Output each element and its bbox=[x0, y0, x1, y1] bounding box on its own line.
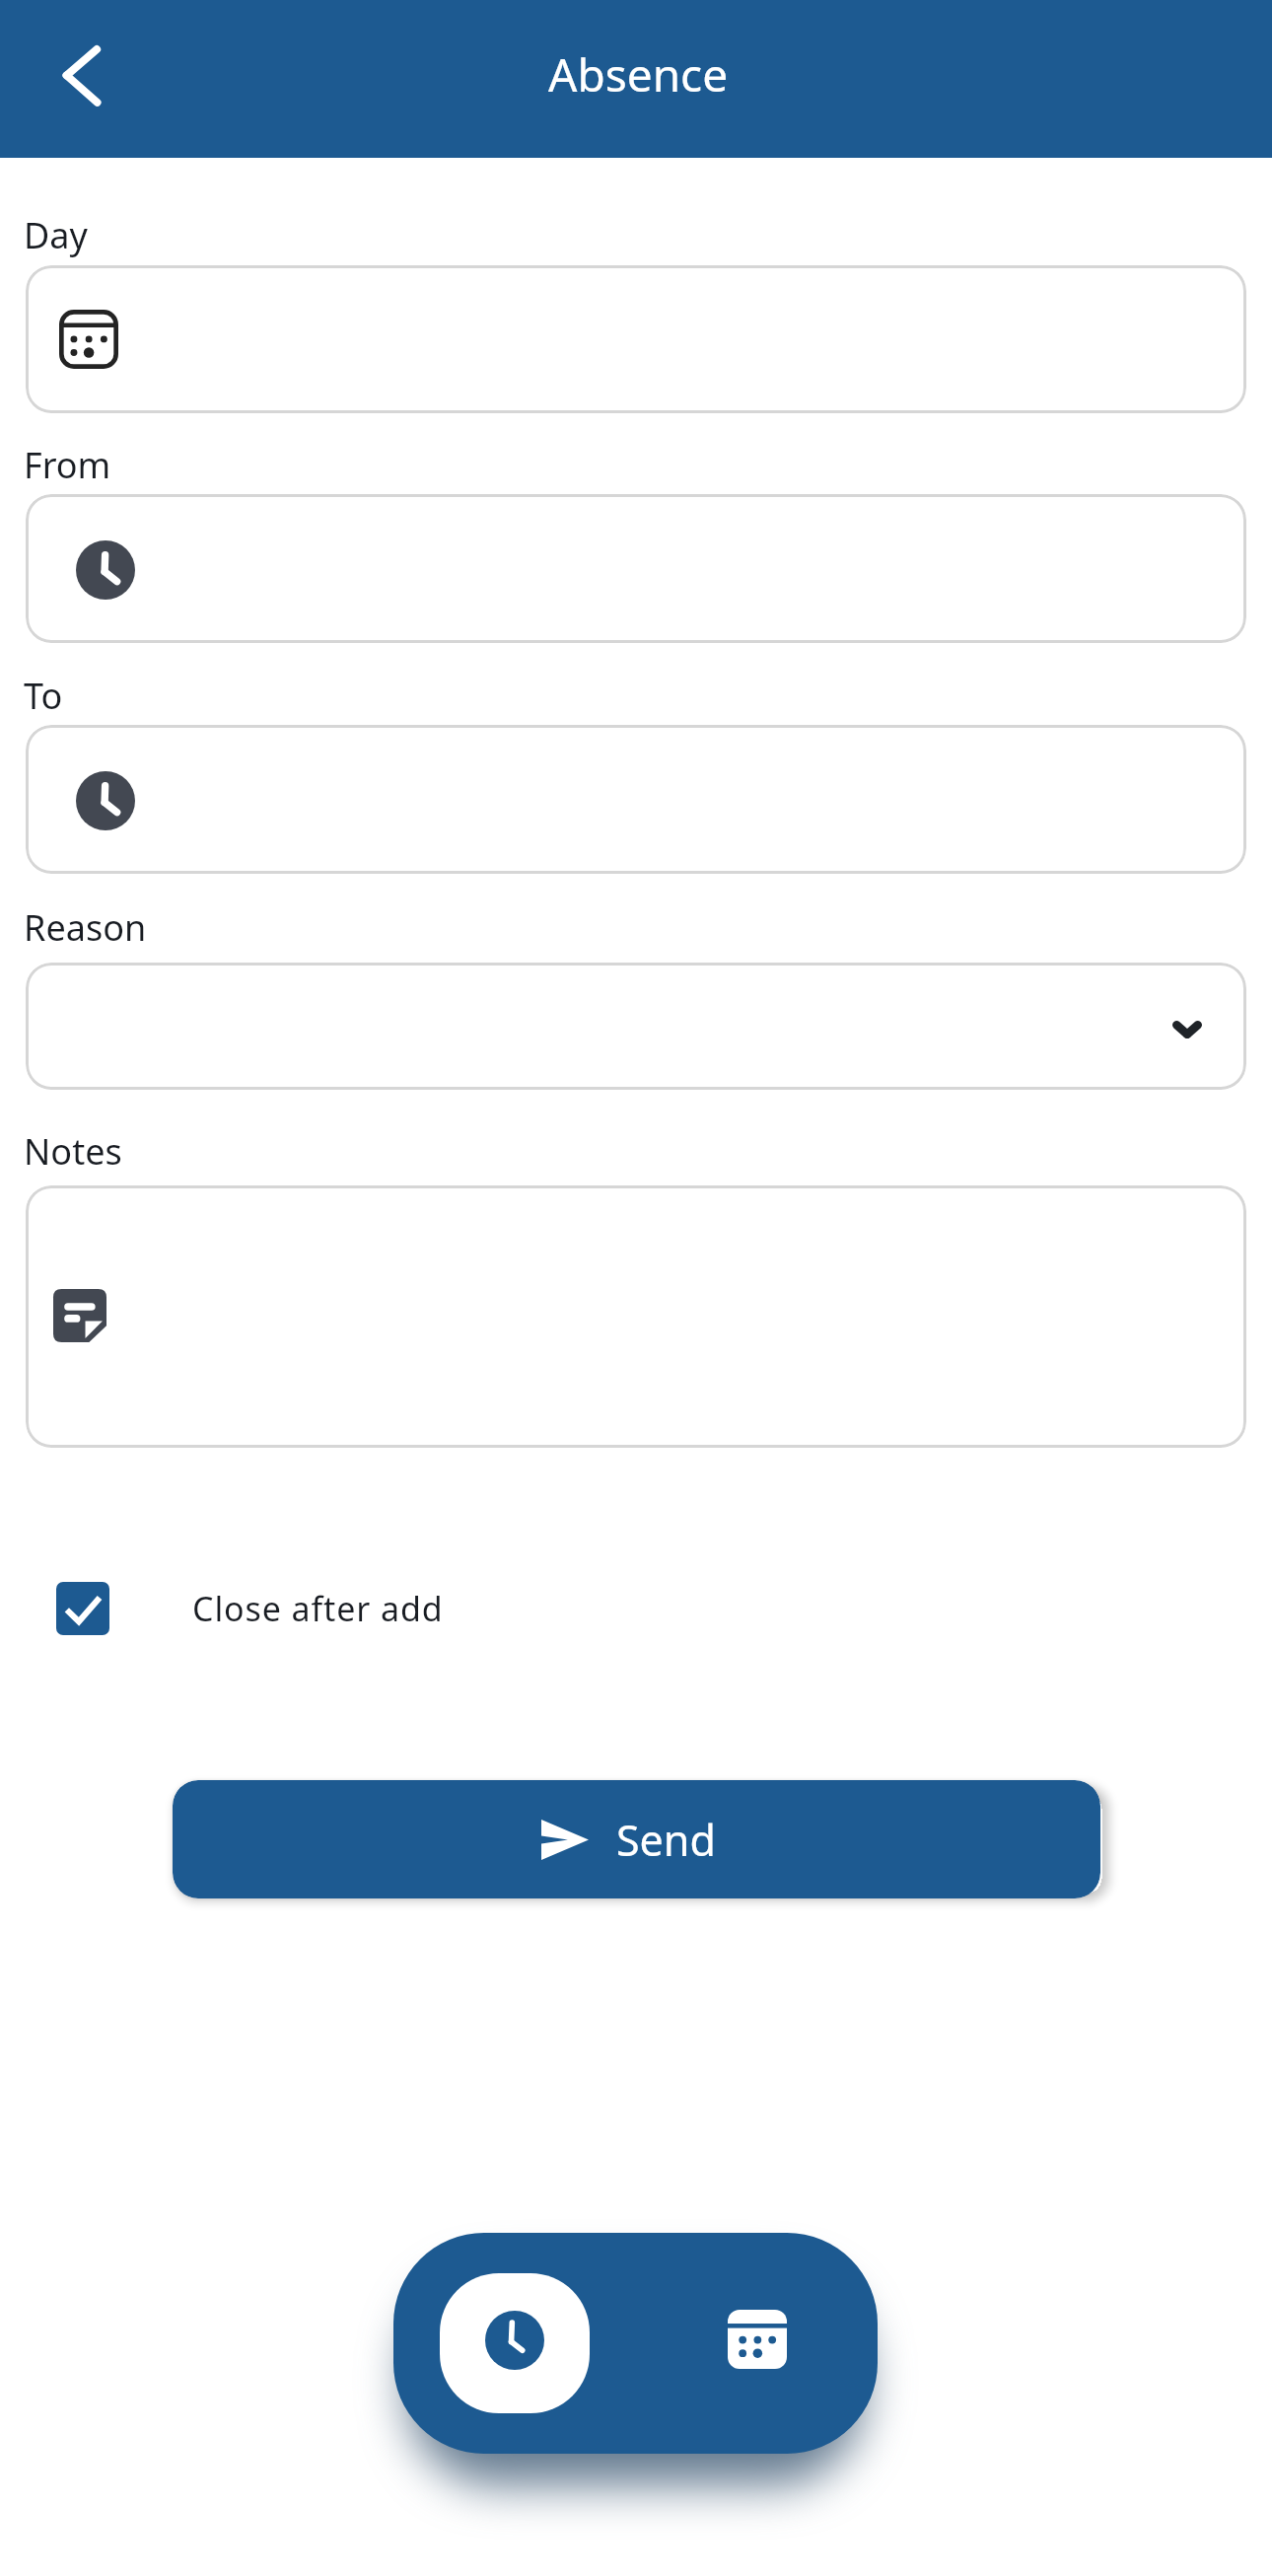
staticText: Notes bbox=[24, 1127, 122, 1176]
staticText: Absence bbox=[548, 43, 729, 106]
button[interactable]: Send bbox=[173, 1780, 1100, 1898]
staticText: From bbox=[24, 441, 111, 489]
staticText: Send bbox=[616, 1811, 716, 1869]
button[interactable]: Calendar tab bbox=[694, 2276, 820, 2402]
staticText: Reason bbox=[24, 903, 147, 952]
button[interactable] bbox=[26, 265, 1246, 413]
button[interactable]: Time tab bbox=[440, 2273, 590, 2413]
staticText: Day bbox=[24, 211, 88, 259]
button[interactable] bbox=[26, 963, 1246, 1090]
staticText: To bbox=[24, 672, 63, 720]
staticText: Close after add bbox=[192, 1586, 444, 1631]
button[interactable] bbox=[26, 725, 1246, 874]
button[interactable] bbox=[26, 494, 1246, 643]
button[interactable] bbox=[26, 1185, 1246, 1448]
button[interactable]: Close after add bbox=[41, 1567, 467, 1650]
button[interactable]: Back bbox=[41, 37, 124, 120]
